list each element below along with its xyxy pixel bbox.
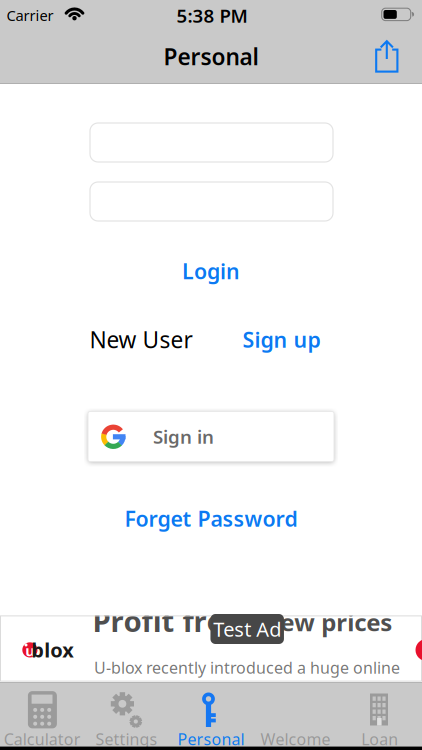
staticText: U-blox recently introduced a huge online xyxy=(94,657,400,678)
staticText: Carrier xyxy=(6,5,53,25)
staticText: Profit from xyxy=(92,601,253,640)
staticText: Personal xyxy=(163,41,258,71)
button[interactable]: Calculator xyxy=(0,682,84,746)
button[interactable]: Share xyxy=(367,35,407,79)
button[interactable]: Settings xyxy=(84,682,169,746)
staticText: Personal xyxy=(177,728,244,750)
staticText: Login xyxy=(182,257,240,285)
button[interactable]: Login xyxy=(182,257,240,285)
button[interactable]: Sign up xyxy=(242,325,320,354)
staticText: Sign in xyxy=(153,424,214,449)
staticText: 5:38 PM xyxy=(176,3,247,28)
button[interactable]: Welcome xyxy=(253,682,338,746)
staticText: Welcome xyxy=(260,728,330,750)
button[interactable]: Loan xyxy=(338,682,422,746)
staticText: New User xyxy=(89,324,192,354)
staticText: ew prices xyxy=(280,606,392,638)
staticText: Sign up xyxy=(242,325,320,354)
button[interactable]: Forget Password xyxy=(124,504,297,533)
staticText: u xyxy=(25,641,35,660)
button[interactable]: Sign in xyxy=(88,411,334,461)
staticText: Forget Password xyxy=(124,504,297,533)
staticText: Calculator xyxy=(4,728,81,750)
staticText: blox xyxy=(31,636,74,663)
staticText: Settings xyxy=(96,728,158,750)
staticText: Loan xyxy=(361,728,398,750)
button[interactable]: Personal xyxy=(169,682,253,746)
staticText: Test Ad xyxy=(213,616,281,642)
